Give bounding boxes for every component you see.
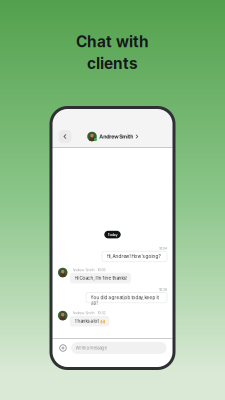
button[interactable]: Back	[58, 130, 71, 143]
staticText: 10:04	[159, 246, 167, 251]
staticText: Hi, Andrew! How's going?	[106, 254, 160, 259]
staticText: Andrew Smith	[99, 133, 133, 140]
staticText: clients	[87, 54, 138, 73]
staticText: You did a great job today, keep it up!	[90, 295, 158, 300]
button[interactable]: Write a message	[71, 342, 166, 354]
staticText: Andrew Smith · 10:32	[72, 311, 105, 315]
staticText: Today	[107, 232, 117, 237]
staticText: Thanks a lot 🙌	[74, 318, 104, 324]
staticText: Hi Coach, I'm fine thanks!	[74, 275, 126, 281]
staticText: 10:28	[159, 287, 167, 292]
staticText: Andrew Smith · 10:05	[72, 268, 105, 272]
staticText: Write a message	[75, 345, 106, 351]
staticText: Chat with	[76, 32, 149, 51]
button[interactable]: Andrew Smith	[87, 132, 138, 141]
button[interactable]: Attach	[58, 342, 67, 354]
